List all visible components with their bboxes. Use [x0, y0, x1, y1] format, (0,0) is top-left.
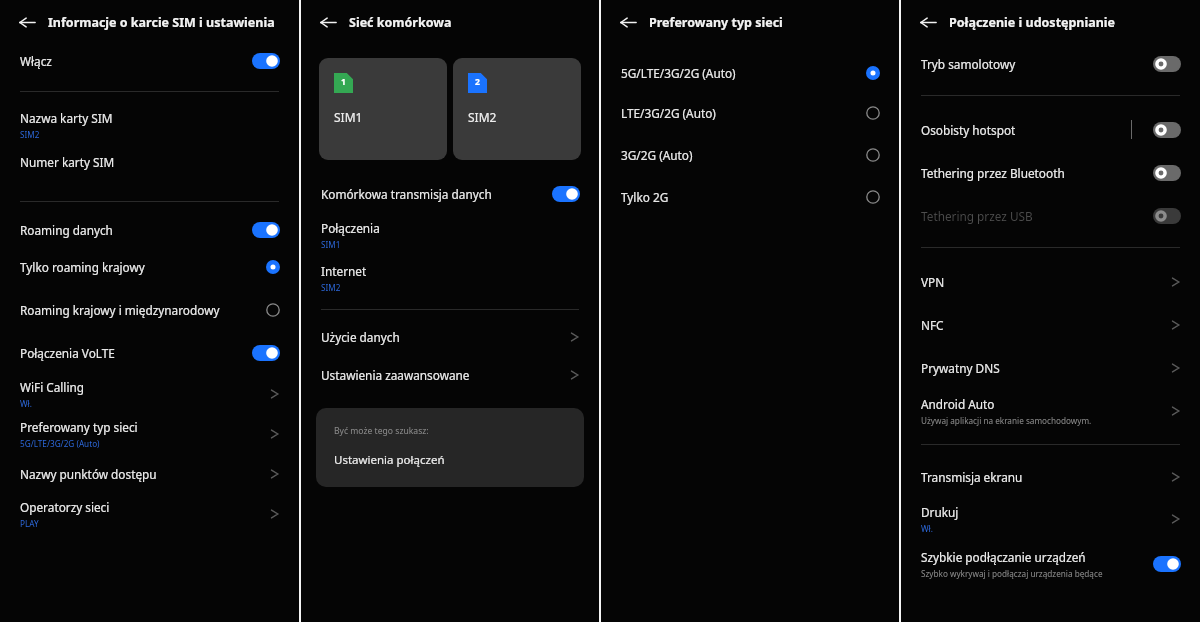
staticText: Roaming krajowy i międzynarodowy	[20, 302, 220, 318]
button[interactable]: 3G/2G (Auto)	[601, 134, 899, 176]
staticText: Sieć komórkowa	[349, 14, 452, 31]
staticText: SIM2	[468, 109, 497, 125]
button[interactable]: Ustawienia zaawansowane	[301, 353, 599, 396]
staticText: 5G/LTE/3G/2G (Auto)	[20, 438, 100, 449]
staticText: Android Auto	[921, 396, 995, 412]
button[interactable]: Tylko 2G	[601, 176, 899, 218]
staticText: WiFi Calling	[20, 379, 84, 395]
button[interactable]: WiFi Calling	[0, 374, 299, 414]
button[interactable]: 5G/LTE/3G/2G (Auto)	[601, 54, 899, 91]
button[interactable]: Połączenia	[301, 213, 599, 256]
other: Back	[320, 14, 337, 31]
button[interactable]: Operatorzy sieci	[0, 494, 299, 534]
staticText: 1	[341, 76, 346, 88]
button[interactable]: Tethering przez USB	[901, 194, 1200, 237]
staticText: Drukuj	[921, 504, 959, 520]
staticText: SIM1	[334, 109, 363, 125]
button[interactable]: 2	[453, 58, 581, 160]
staticText: Szybkie podłączanie urządzeń	[921, 549, 1086, 565]
button[interactable]: Internet	[301, 256, 599, 299]
staticText: Tryb samolotowy	[921, 56, 1016, 72]
button[interactable]: Prywatny DNS	[901, 346, 1200, 389]
button[interactable]: Osobisty hotspot	[901, 108, 1200, 151]
staticText: Użycie danych	[321, 329, 400, 345]
button[interactable]: Nazwy punktów dostępu	[0, 454, 299, 494]
staticText: SIM2	[321, 282, 341, 293]
staticText: Szybko wykrywaj i podłączaj urządzenia b…	[921, 568, 1103, 579]
staticText: Tethering przez USB	[921, 208, 1033, 224]
staticText: Nazwy punktów dostępu	[20, 466, 157, 482]
button[interactable]: LTE/3G/2G (Auto)	[601, 91, 899, 134]
staticText: Tylko 2G	[621, 189, 669, 205]
staticText: SIM1	[321, 239, 341, 250]
button[interactable]: Preferowany typ sieci	[0, 414, 299, 454]
staticText: VPN	[921, 274, 945, 290]
button[interactable]: Nazwa karty SIM	[0, 104, 299, 145]
staticText: Tylko roaming krajowy	[20, 259, 145, 275]
button[interactable]: Użycie danych	[301, 321, 599, 353]
staticText: Tethering przez Bluetooth	[921, 165, 1065, 181]
button[interactable]: Szybkie podłączanie urządzeń	[901, 541, 1200, 586]
staticText: Operatorzy sieci	[20, 499, 110, 515]
button[interactable]: Android Auto	[901, 389, 1200, 433]
staticText: Ustawienia połączeń	[334, 452, 445, 468]
button[interactable]: Tylko roaming krajowy	[0, 245, 299, 288]
staticText: Wł.	[921, 523, 933, 534]
staticText: Transmisja ekranu	[921, 469, 1023, 485]
button[interactable]: Tryb samolotowy	[901, 44, 1200, 83]
button[interactable]: Włącz	[0, 44, 299, 78]
button[interactable]: VPN	[901, 260, 1200, 303]
other: Back	[19, 14, 36, 31]
staticText: Być może tego szukasz:	[334, 425, 429, 437]
button[interactable]: Numer karty SIM	[0, 145, 299, 179]
staticText: Połączenia	[321, 220, 380, 236]
staticText: Internet	[321, 263, 367, 279]
staticText: Numer karty SIM	[20, 154, 115, 170]
button[interactable]: Back	[915, 9, 941, 35]
staticText: NFC	[921, 317, 944, 333]
button[interactable]: Tethering przez Bluetooth	[901, 151, 1200, 194]
staticText: 2	[475, 76, 480, 88]
staticText: Włącz	[20, 53, 52, 69]
staticText: Nazwa karty SIM	[20, 110, 113, 126]
staticText: Preferowany typ sieci	[649, 14, 783, 31]
button[interactable]: NFC	[901, 303, 1200, 346]
staticText: Używaj aplikacji na ekranie samochodowym…	[921, 415, 1092, 426]
staticText: LTE/3G/2G (Auto)	[621, 105, 716, 121]
button[interactable]: Transmisja ekranu	[901, 457, 1200, 496]
button[interactable]: Roaming danych	[0, 215, 299, 245]
button[interactable]: Drukuj	[901, 496, 1200, 541]
staticText: SIM2	[20, 129, 40, 140]
staticText: Osobisty hotspot	[921, 122, 1131, 138]
button[interactable]: Back	[14, 9, 40, 35]
staticText: 3G/2G (Auto)	[621, 147, 693, 163]
staticText: Preferowany typ sieci	[20, 419, 138, 435]
staticText: Połączenie i udostępnianie	[949, 14, 1116, 31]
button[interactable]: Być może tego szukasz:	[316, 408, 584, 487]
button[interactable]: 1	[319, 58, 447, 160]
staticText: Ustawienia zaawansowane	[321, 367, 470, 383]
staticText: PLAY	[20, 518, 39, 529]
staticText: Połączenia VoLTE	[20, 345, 115, 361]
staticText: Wł.	[20, 398, 32, 409]
staticText: Komórkowa transmisja danych	[321, 186, 492, 202]
other: Back	[920, 14, 937, 31]
staticText: Roaming danych	[20, 222, 113, 238]
button[interactable]: Komórkowa transmisja danych	[301, 175, 599, 213]
button[interactable]: Roaming krajowy i międzynarodowy	[0, 288, 299, 331]
other: Back	[620, 14, 637, 31]
staticText: Prywatny DNS	[921, 360, 1000, 376]
staticText: 5G/LTE/3G/2G (Auto)	[621, 65, 736, 81]
button[interactable]: Back	[315, 9, 341, 35]
button[interactable]: Back	[615, 9, 641, 35]
button[interactable]: Połączenia VoLTE	[0, 331, 299, 374]
staticText: Informacje o karcie SIM i ustawienia	[48, 14, 275, 31]
